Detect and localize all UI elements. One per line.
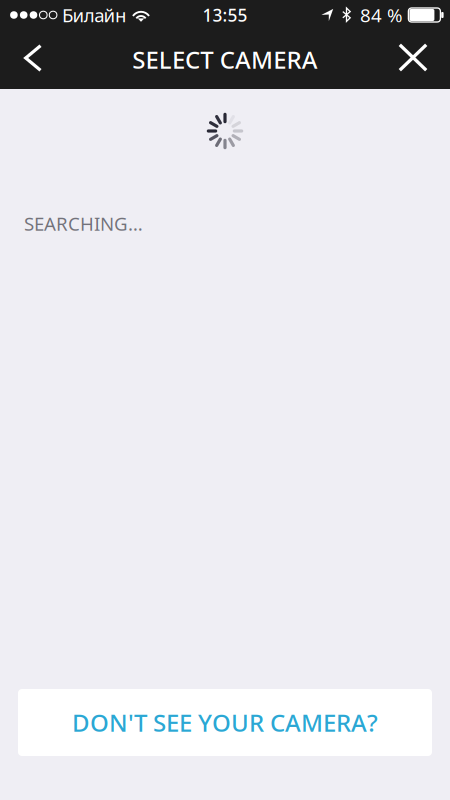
- staticText: DON'T SEE YOUR CAMERA?: [72, 707, 378, 738]
- staticText: SEARCHING…: [24, 211, 143, 236]
- staticText: Билайн: [62, 3, 126, 27]
- button[interactable]: Close: [390, 30, 436, 89]
- staticText: 13:55: [202, 3, 247, 26]
- staticText: 84 %: [360, 3, 403, 27]
- button[interactable]: DON'T SEE YOUR CAMERA?: [18, 689, 432, 756]
- button[interactable]: Back: [10, 30, 56, 89]
- staticText: SELECT CAMERA: [132, 44, 318, 75]
